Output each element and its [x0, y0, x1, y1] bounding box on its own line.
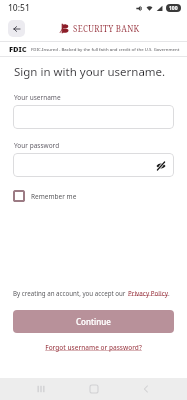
staticText: Continue	[76, 316, 111, 327]
button[interactable]: Back	[8, 20, 25, 37]
button[interactable]: Continue	[13, 310, 174, 333]
staticText: Remember me	[31, 192, 77, 201]
staticText: 10:51	[8, 2, 30, 14]
button[interactable]: Recent apps	[30, 378, 52, 400]
button[interactable]: Privacy Policy	[128, 289, 168, 297]
staticText: Your password	[14, 141, 60, 150]
button[interactable]: Show password	[13, 153, 174, 177]
staticText: FDIC-Insured - Backed by the full faith …	[31, 46, 180, 52]
button[interactable]: Show password	[154, 159, 167, 172]
staticText: .	[168, 289, 170, 297]
staticText: By creating an account, you accept our	[13, 289, 128, 297]
button[interactable]: Home	[83, 378, 105, 400]
button[interactable]: Forgot username or password?	[45, 343, 142, 352]
staticText: Your username	[14, 93, 61, 102]
staticText: SECURITY BANK	[73, 23, 140, 34]
staticText: FDIC	[9, 44, 27, 54]
button[interactable]	[13, 105, 174, 129]
button[interactable]: Remember me	[13, 190, 77, 202]
staticText: Sign in with your username.	[14, 64, 166, 80]
staticText: 100	[169, 5, 178, 12]
